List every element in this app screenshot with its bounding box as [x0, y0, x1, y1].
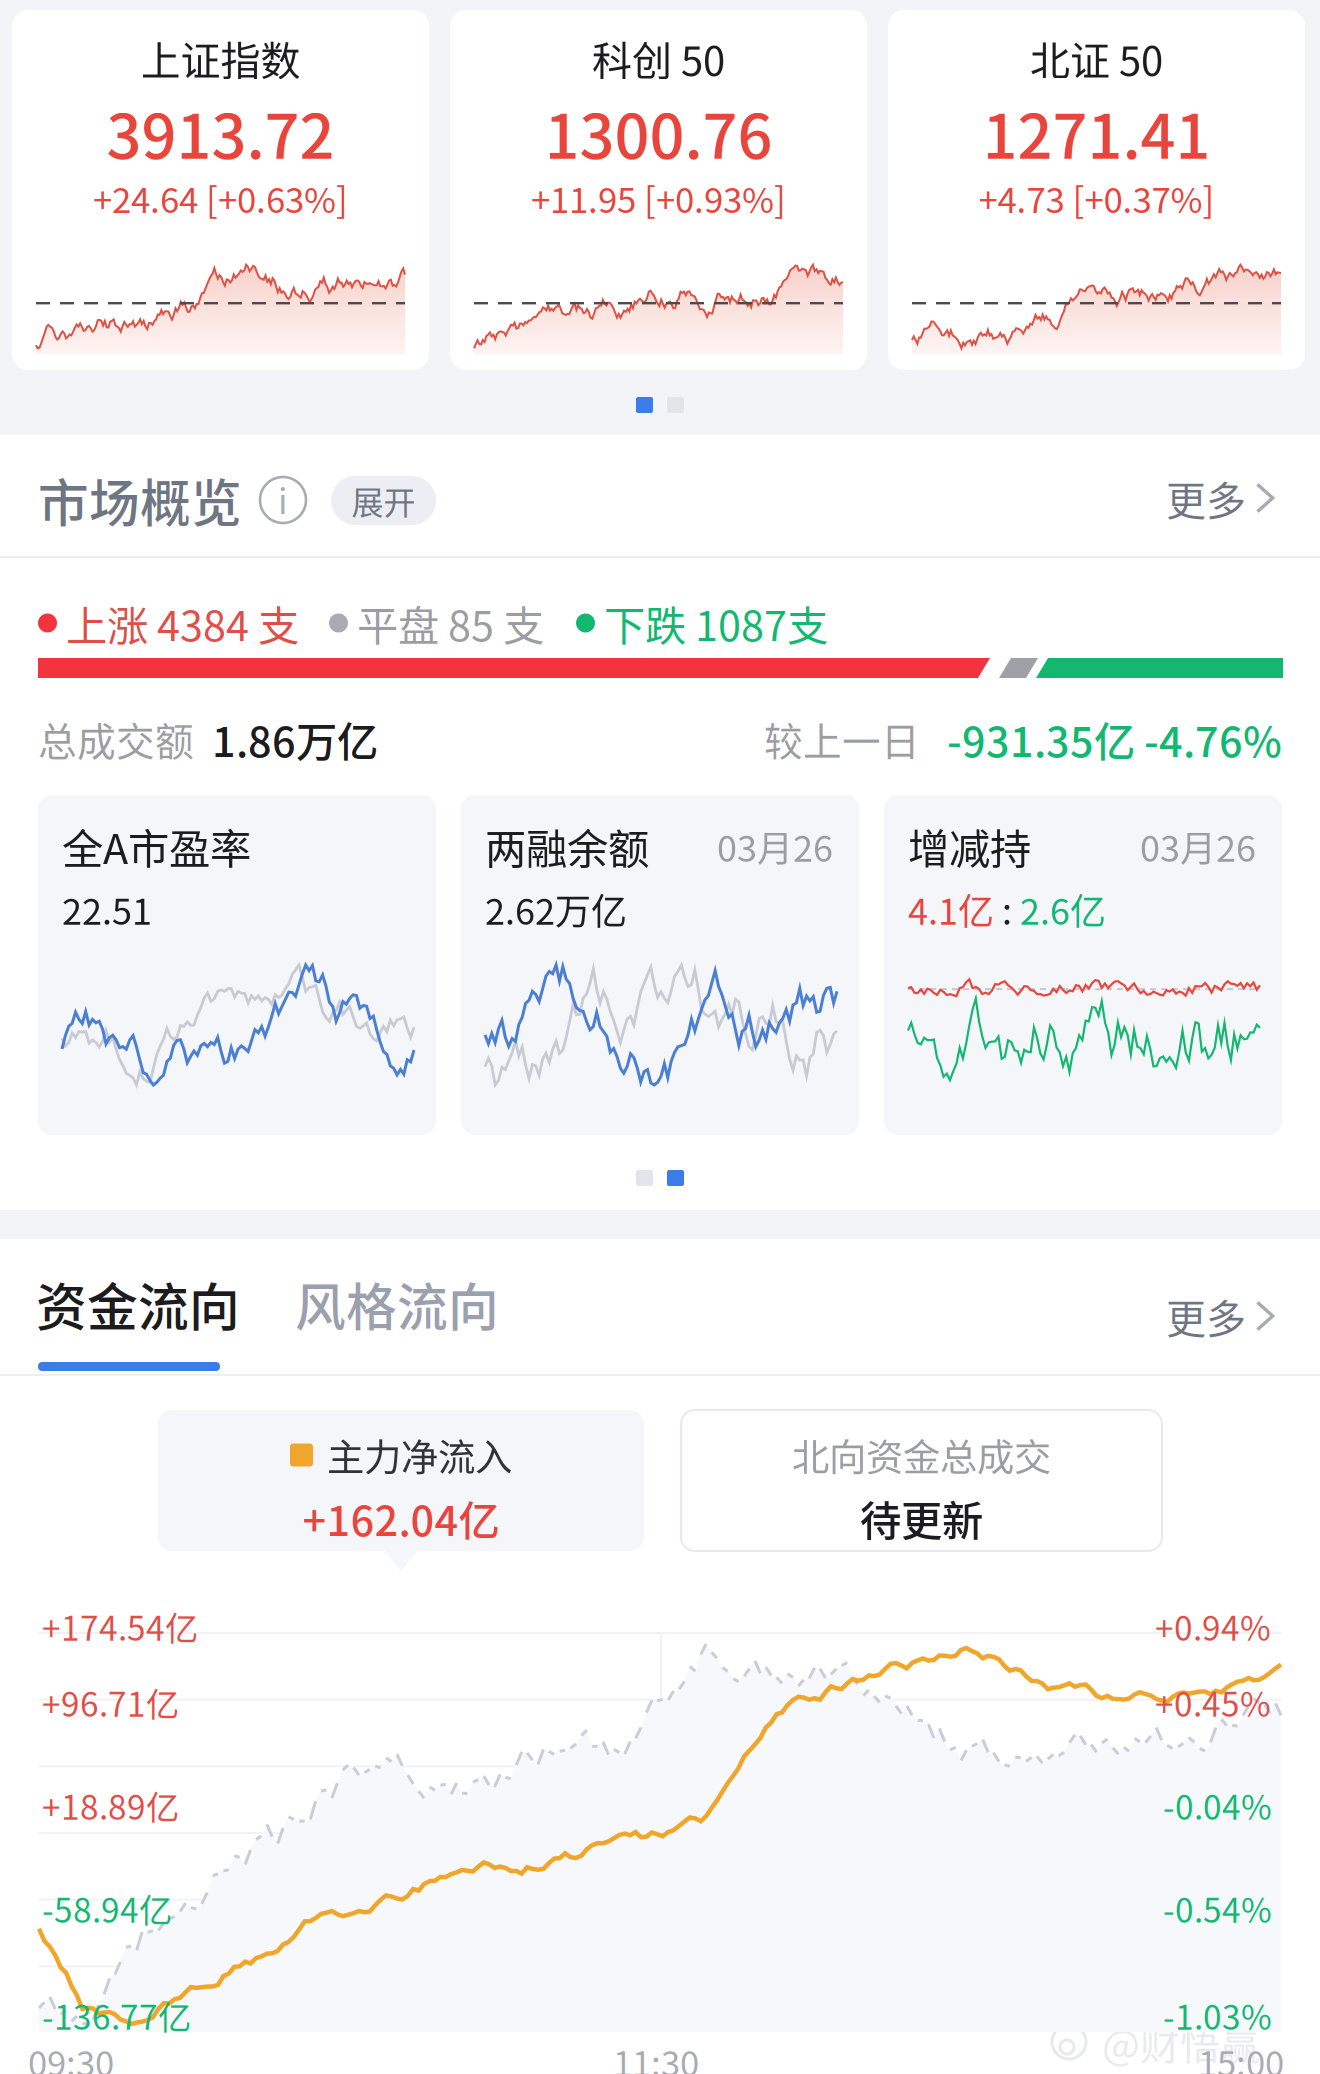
- staticText: 两融余额: [485, 816, 649, 876]
- staticText: 4.1亿: [908, 883, 994, 935]
- staticText: +0.45%: [1155, 1678, 1271, 1726]
- staticText: 平盘 85 支: [348, 593, 544, 653]
- staticText: 1271.41: [982, 88, 1210, 176]
- staticText: +96.71亿: [42, 1678, 179, 1726]
- button[interactable]: 两融余额: [461, 795, 859, 1135]
- staticText: i: [278, 474, 288, 524]
- button[interactable]: 展开: [331, 476, 436, 525]
- staticText: 22.51: [62, 883, 152, 935]
- staticText: 03月26: [1140, 820, 1256, 872]
- staticText: 1300.76: [544, 88, 772, 176]
- staticText: -136.77亿: [42, 1991, 191, 2039]
- staticText: 展开: [351, 477, 415, 524]
- staticText: @财悟赢: [1102, 2013, 1260, 2071]
- button[interactable]: 资金流向: [36, 1276, 268, 1376]
- staticText: 15:00: [1198, 2036, 1284, 2074]
- button[interactable]: 风格流向: [295, 1276, 525, 1332]
- staticText: 风格流向: [295, 1267, 499, 1341]
- staticText: 更多: [1166, 469, 1246, 527]
- button[interactable]: 北向资金总成交: [681, 1410, 1162, 1551]
- button[interactable]: 更多: [1166, 1288, 1274, 1344]
- staticText: 增减持: [908, 816, 1031, 876]
- staticText: 市场概览: [38, 463, 242, 537]
- staticText: :: [994, 883, 1020, 935]
- staticText: 北证 50: [1030, 29, 1163, 87]
- staticText: 主力净流入: [327, 1428, 512, 1482]
- staticText: 09:30: [28, 2036, 114, 2074]
- staticText: 11:30: [613, 2036, 699, 2074]
- staticText: 总成交额: [38, 711, 194, 767]
- staticText: -0.04%: [1163, 1781, 1272, 1829]
- staticText: 待更新: [860, 1488, 983, 1548]
- button[interactable]: 增减持: [884, 795, 1282, 1135]
- staticText: -1.03%: [1163, 1991, 1272, 2039]
- staticText: 1.86万亿: [194, 709, 378, 769]
- staticText: 3913.72: [106, 88, 334, 176]
- button[interactable]: 北证 50: [888, 10, 1305, 370]
- staticText: +162.04亿: [302, 1488, 499, 1548]
- staticText: 科创 50: [592, 29, 725, 87]
- staticText: -58.94亿: [42, 1884, 172, 1932]
- staticText: 上证指数: [140, 29, 300, 87]
- button[interactable]: 上证指数: [12, 10, 429, 370]
- staticText: 资金流向: [36, 1267, 240, 1341]
- staticText: 更多: [1166, 1287, 1246, 1345]
- staticText: +18.89亿: [42, 1781, 179, 1829]
- staticText: 上涨 4384 支: [57, 593, 299, 653]
- staticText: +0.94%: [1155, 1602, 1271, 1650]
- staticText: -0.54%: [1163, 1884, 1272, 1932]
- button[interactable]: 主力净流入: [158, 1410, 644, 1551]
- staticText: +174.54亿: [42, 1602, 198, 1650]
- staticText: 全A市盈率: [62, 816, 251, 876]
- staticText: 较上一日: [764, 711, 920, 767]
- staticText: -931.35亿 -4.76%: [920, 709, 1282, 769]
- staticText: 2.6亿: [1020, 883, 1106, 935]
- staticText: +4.73 [+0.37%]: [978, 173, 1214, 223]
- staticText: +11.95 [+0.93%]: [531, 173, 786, 223]
- staticText: 03月26: [717, 820, 833, 872]
- staticText: 下跌 1087支: [595, 593, 828, 653]
- button[interactable]: 科创 50: [450, 10, 867, 370]
- staticText: +24.64 [+0.63%]: [93, 173, 348, 223]
- button[interactable]: 全A市盈率: [38, 795, 436, 1135]
- button[interactable]: 更多: [1166, 470, 1274, 526]
- staticText: 2.62万亿: [485, 883, 627, 935]
- staticText: 北向资金总成交: [792, 1428, 1051, 1482]
